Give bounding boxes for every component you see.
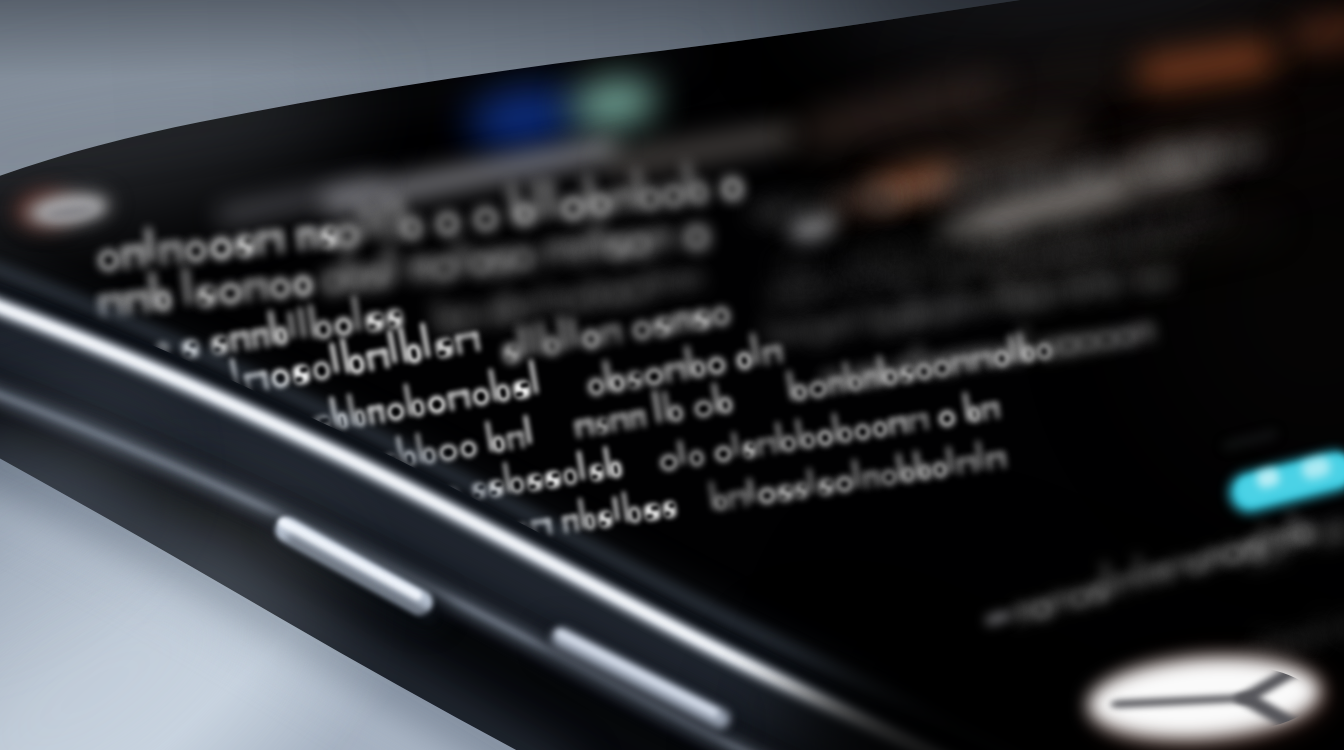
button[interactable]: List item, details row [312, 440, 1192, 498]
button[interactable]: List item, Launch row [150, 318, 1230, 378]
other: Smartphone display close-up photo [0, 0, 1344, 750]
button[interactable]: App badge [1078, 650, 1338, 750]
button[interactable]: List item, Application row [292, 398, 1212, 458]
button[interactable]: List item, final row [430, 514, 1150, 572]
button[interactable]: List item, headline row [96, 224, 1236, 286]
button[interactable]: Volume button [260, 508, 456, 630]
button[interactable]: List item, Hlaters row [214, 360, 1214, 420]
button[interactable]: List item, description row [376, 476, 1176, 534]
button[interactable]: Caption row [990, 546, 1344, 642]
button[interactable]: Status badge [1210, 452, 1344, 514]
button[interactable]: Power button [534, 624, 760, 750]
